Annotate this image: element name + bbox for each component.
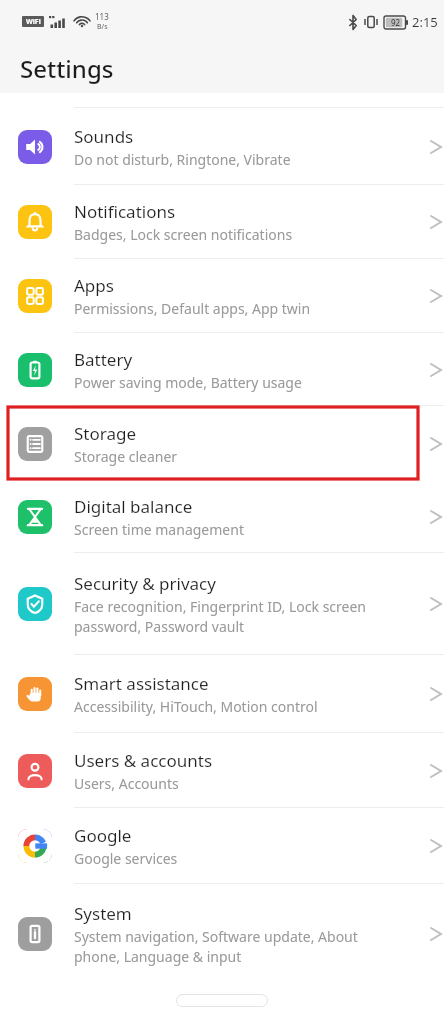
staticText: System navigation, Software update, Abou… <box>74 927 358 966</box>
staticText: Screen time management <box>74 520 244 539</box>
staticText: System <box>74 902 132 925</box>
staticText: Settings <box>20 52 114 85</box>
button[interactable]: Security & privacy <box>0 553 444 655</box>
button[interactable]: Smart assistance <box>0 655 444 733</box>
staticText: Storage cleaner <box>74 447 178 466</box>
staticText: 2:15 <box>412 13 438 31</box>
staticText: Smart assistance <box>74 672 209 695</box>
staticText: Security & privacy <box>74 572 216 595</box>
button[interactable]: Battery <box>0 333 444 406</box>
button[interactable]: Apps <box>0 259 444 333</box>
button[interactable]: Notifications <box>0 185 444 259</box>
staticText: Google <box>74 824 132 847</box>
staticText: Face recognition, Fingerprint ID, Lock s… <box>74 597 366 636</box>
button[interactable]: Digital balance <box>0 481 444 553</box>
staticText: Battery <box>74 348 133 371</box>
staticText: Accessibility, HiTouch, Motion control <box>74 697 318 716</box>
staticText: Digital balance <box>74 495 193 518</box>
staticText: Storage <box>74 422 137 445</box>
staticText: Permissions, Default apps, App twin <box>74 299 311 318</box>
staticText: Google services <box>74 849 178 868</box>
button[interactable]: Storage <box>0 406 444 481</box>
button[interactable]: Google <box>0 808 444 884</box>
staticText: 92 <box>391 17 401 28</box>
staticText: Apps <box>74 274 114 297</box>
staticText: Users, Accounts <box>74 774 179 793</box>
staticText: Notifications <box>74 200 176 223</box>
staticText: Power saving mode, Battery usage <box>74 373 302 392</box>
staticText: Users & accounts <box>74 749 213 772</box>
staticText: B/s <box>97 22 108 32</box>
staticText: WiFi <box>26 17 41 27</box>
button[interactable]: Users & accounts <box>0 733 444 808</box>
button[interactable]: System <box>0 884 444 984</box>
staticText: Do not disturb, Ringtone, Vibrate <box>74 150 291 169</box>
staticText: Badges, Lock screen notifications <box>74 225 293 244</box>
button[interactable]: Sounds <box>0 108 444 185</box>
staticText: 113 <box>95 11 109 22</box>
staticText: Sounds <box>74 125 134 148</box>
